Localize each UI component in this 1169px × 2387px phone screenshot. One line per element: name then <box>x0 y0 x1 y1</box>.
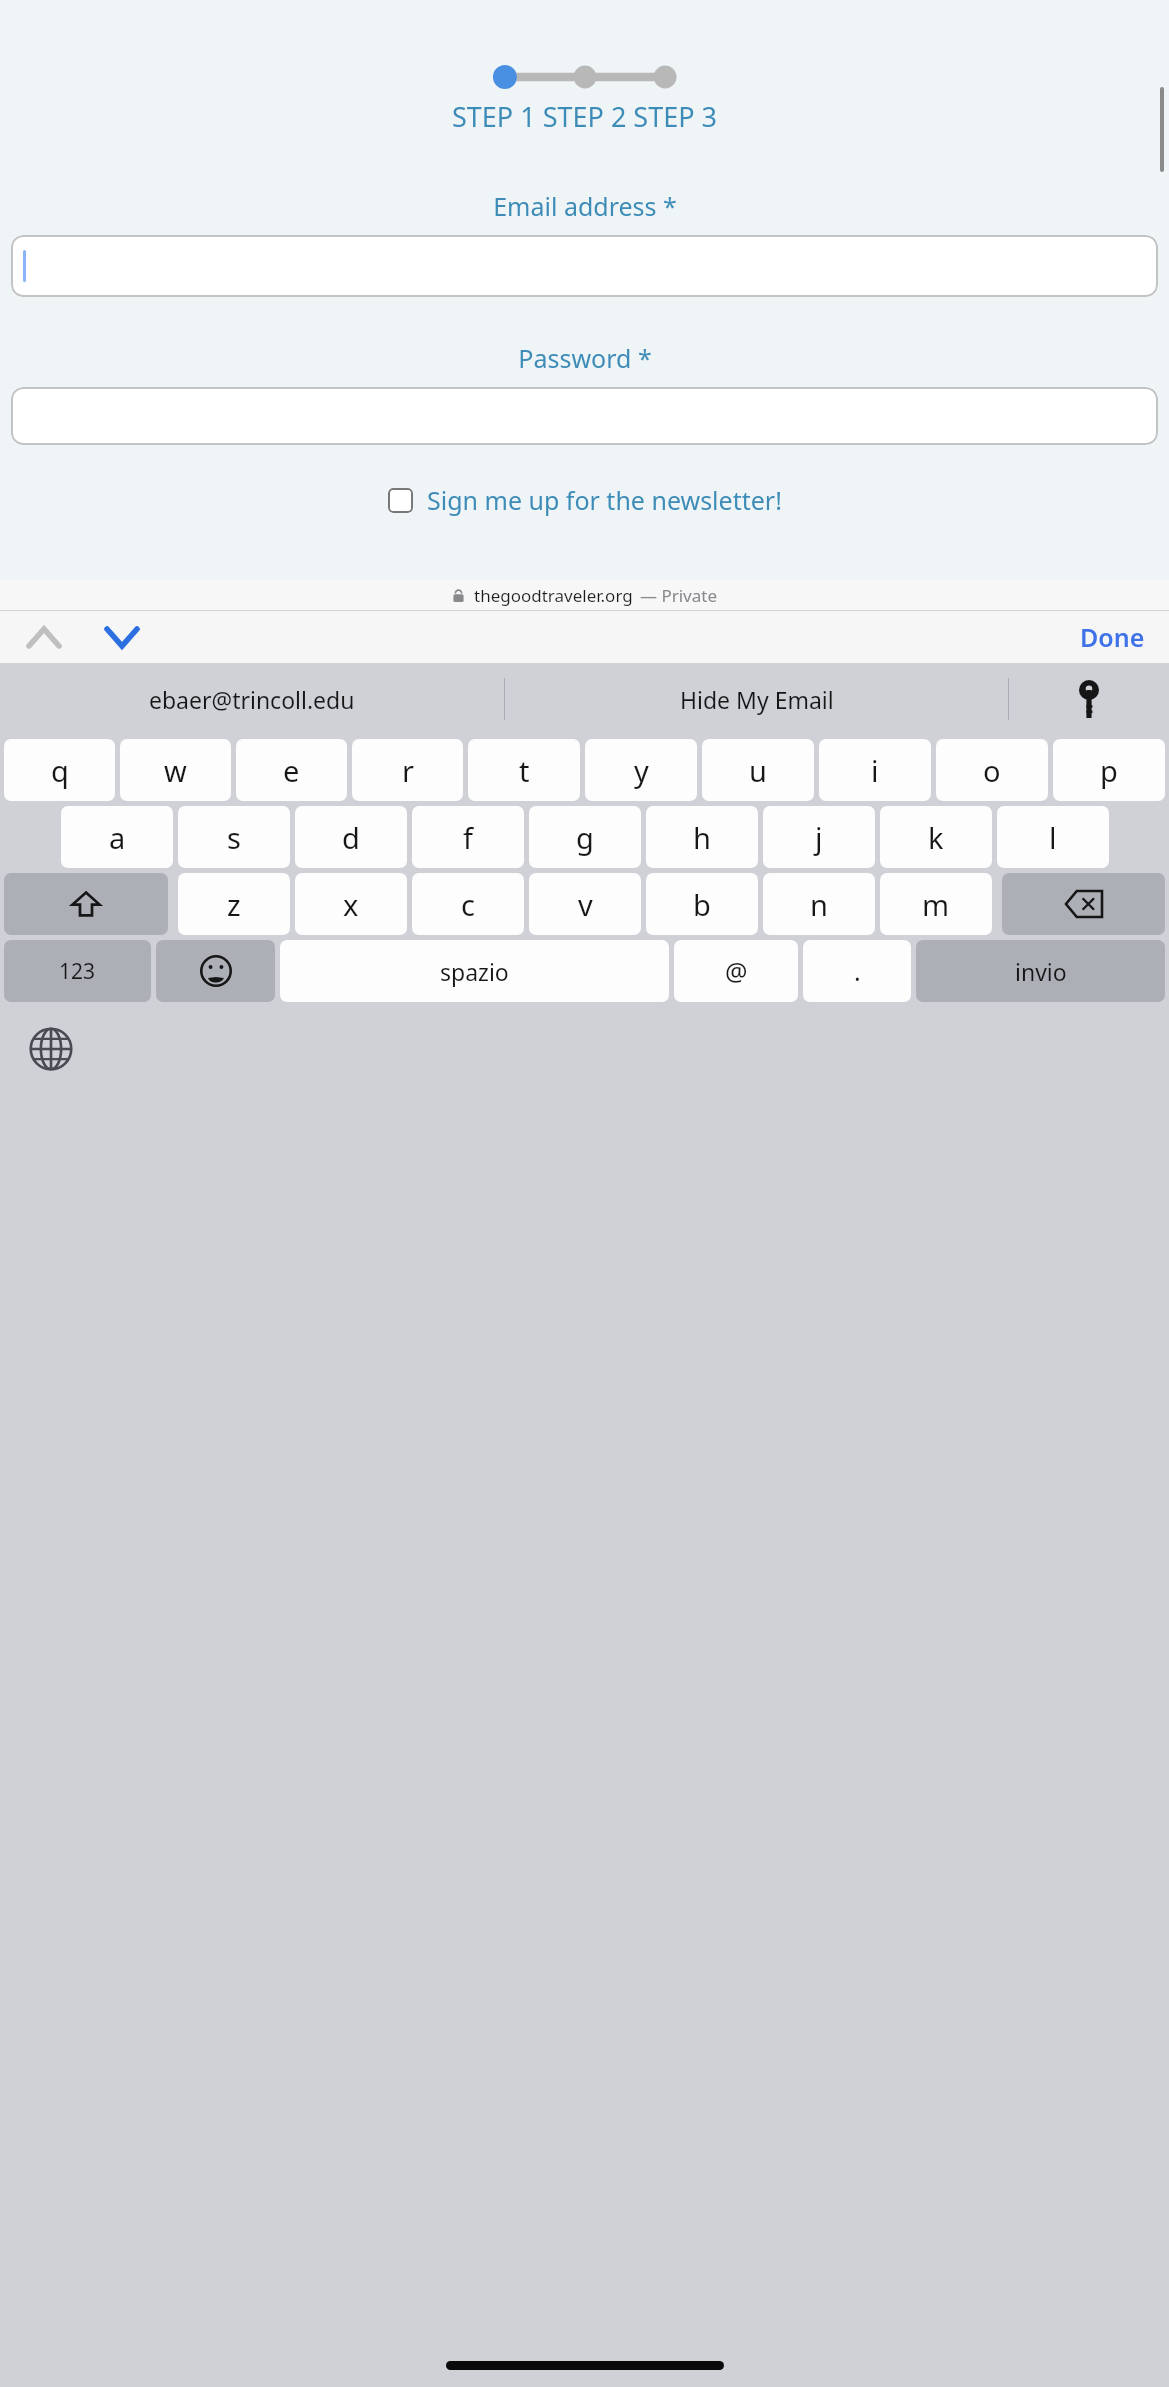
staticText: n <box>810 885 828 924</box>
staticText: Email address * <box>493 189 677 223</box>
button[interactable]: spazio <box>280 940 669 1002</box>
button[interactable]: Emoji <box>156 940 275 1002</box>
staticText: m <box>922 885 950 924</box>
staticText: x <box>343 885 359 924</box>
staticText: k <box>928 818 944 857</box>
button[interactable]: m <box>880 873 992 935</box>
button[interactable]: p <box>1053 739 1165 801</box>
button[interactable]: Change keyboard <box>22 1020 80 1078</box>
button[interactable]: e <box>236 739 347 801</box>
staticText: . <box>854 954 861 988</box>
staticText: thegoodtraveler.org <box>474 584 633 607</box>
button[interactable]: q <box>4 739 115 801</box>
button[interactable]: o <box>936 739 1048 801</box>
staticText: e <box>283 751 300 790</box>
staticText: — Private <box>640 584 718 607</box>
staticText: u <box>749 751 767 790</box>
button[interactable]: c <box>412 873 524 935</box>
button[interactable]: d <box>295 806 407 868</box>
button[interactable]: i <box>819 739 931 801</box>
button[interactable]: invio <box>916 940 1165 1002</box>
button[interactable]: @ <box>674 940 798 1002</box>
button[interactable]: v <box>529 873 641 935</box>
button[interactable]: Passwords <box>1009 663 1169 735</box>
staticText: b <box>693 885 711 924</box>
button[interactable]: Done <box>1074 614 1151 660</box>
staticText: Password * <box>518 341 652 375</box>
staticText: o <box>983 751 1001 790</box>
button[interactable]: thegoodtraveler.org <box>451 584 718 607</box>
button[interactable]: 123 <box>4 940 151 1002</box>
staticText: STEP 1 STEP 2 STEP 3 <box>452 98 717 135</box>
button[interactable]: ebaer@trincoll.edu <box>0 663 504 735</box>
button[interactable] <box>11 387 1158 445</box>
staticText: p <box>1100 751 1118 790</box>
button[interactable]: Next field <box>96 611 148 663</box>
staticText: l <box>1049 818 1057 857</box>
button[interactable]: x <box>295 873 407 935</box>
button[interactable]: g <box>529 806 641 868</box>
button[interactable]: u <box>702 739 814 801</box>
staticText: v <box>578 885 593 924</box>
staticText: y <box>634 751 649 790</box>
staticText: h <box>693 818 711 857</box>
staticText: @ <box>725 954 748 988</box>
button[interactable]: . <box>803 940 911 1002</box>
button[interactable]: l <box>997 806 1109 868</box>
staticText: t <box>519 751 530 790</box>
staticText: z <box>227 885 241 924</box>
button[interactable]: Sign me up for the newsletter! <box>388 483 782 517</box>
staticText: Done <box>1080 620 1145 654</box>
staticText: f <box>463 818 473 857</box>
button[interactable]: j <box>763 806 875 868</box>
staticText: d <box>342 818 360 857</box>
button[interactable]: Backspace <box>1002 873 1165 935</box>
button[interactable]: w <box>120 739 231 801</box>
staticText: spazio <box>440 956 509 987</box>
button[interactable]: z <box>178 873 290 935</box>
staticText: ebaer@trincoll.edu <box>149 684 355 715</box>
staticText: g <box>576 818 594 857</box>
staticText: c <box>461 885 475 924</box>
staticText: Sign me up for the newsletter! <box>427 483 782 517</box>
button[interactable]: h <box>646 806 758 868</box>
button[interactable]: y <box>585 739 697 801</box>
staticText: s <box>227 818 241 857</box>
staticText: w <box>164 751 187 790</box>
button[interactable]: Shift <box>4 873 168 935</box>
button[interactable]: s <box>178 806 290 868</box>
staticText: 123 <box>59 957 96 986</box>
button[interactable]: f <box>412 806 524 868</box>
button[interactable]: b <box>646 873 758 935</box>
staticText: i <box>871 751 879 790</box>
staticText: q <box>51 751 69 790</box>
button[interactable]: r <box>352 739 463 801</box>
staticText: j <box>815 818 823 857</box>
button[interactable]: t <box>468 739 580 801</box>
button[interactable]: Hide My Email <box>505 663 1008 735</box>
button[interactable]: n <box>763 873 875 935</box>
staticText: a <box>109 818 126 857</box>
button[interactable] <box>11 235 1158 297</box>
button[interactable]: k <box>880 806 992 868</box>
staticText: Hide My Email <box>680 684 834 715</box>
button[interactable]: Previous field <box>18 611 70 663</box>
button[interactable]: a <box>61 806 173 868</box>
staticText: invio <box>1015 956 1067 987</box>
staticText: r <box>402 751 414 790</box>
